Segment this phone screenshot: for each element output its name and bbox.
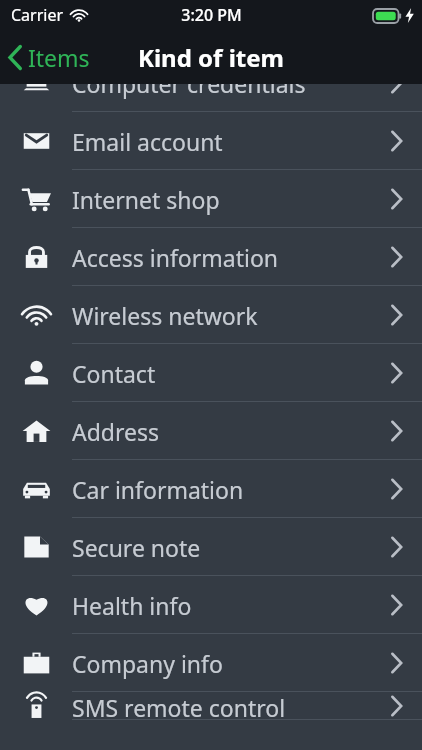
staticText: 3:20 PM xyxy=(181,4,242,26)
staticText: Items xyxy=(28,42,90,73)
button[interactable]: Contact xyxy=(0,344,422,402)
button[interactable]: Internet shop xyxy=(0,170,422,228)
staticText: Internet shop xyxy=(72,184,390,215)
button[interactable]: Wireless network xyxy=(0,286,422,344)
button[interactable]: Company info xyxy=(0,634,422,692)
staticText: Computer credentials xyxy=(72,84,390,99)
button[interactable]: Computer credentials xyxy=(0,84,422,112)
button[interactable]: Items xyxy=(0,36,100,79)
button[interactable]: Access information xyxy=(0,228,422,286)
staticText: SMS remote control xyxy=(72,692,390,720)
button[interactable]: Secure note xyxy=(0,518,422,576)
staticText: Company info xyxy=(72,648,390,679)
staticText: Access information xyxy=(72,242,390,273)
button[interactable]: Email account xyxy=(0,112,422,170)
staticText: Carrier xyxy=(11,4,64,26)
button[interactable]: Car information xyxy=(0,460,422,518)
staticText: Email account xyxy=(72,126,390,157)
staticText: Car information xyxy=(72,474,390,505)
button[interactable]: Address xyxy=(0,402,422,460)
staticText: Health info xyxy=(72,590,390,621)
staticText: Contact xyxy=(72,358,390,389)
button[interactable]: SMS remote control xyxy=(0,692,422,720)
staticText: Secure note xyxy=(72,532,390,563)
staticText: Wireless network xyxy=(72,300,390,331)
button[interactable]: Health info xyxy=(0,576,422,634)
staticText: Address xyxy=(72,416,390,447)
staticText: Kind of item xyxy=(138,41,284,74)
